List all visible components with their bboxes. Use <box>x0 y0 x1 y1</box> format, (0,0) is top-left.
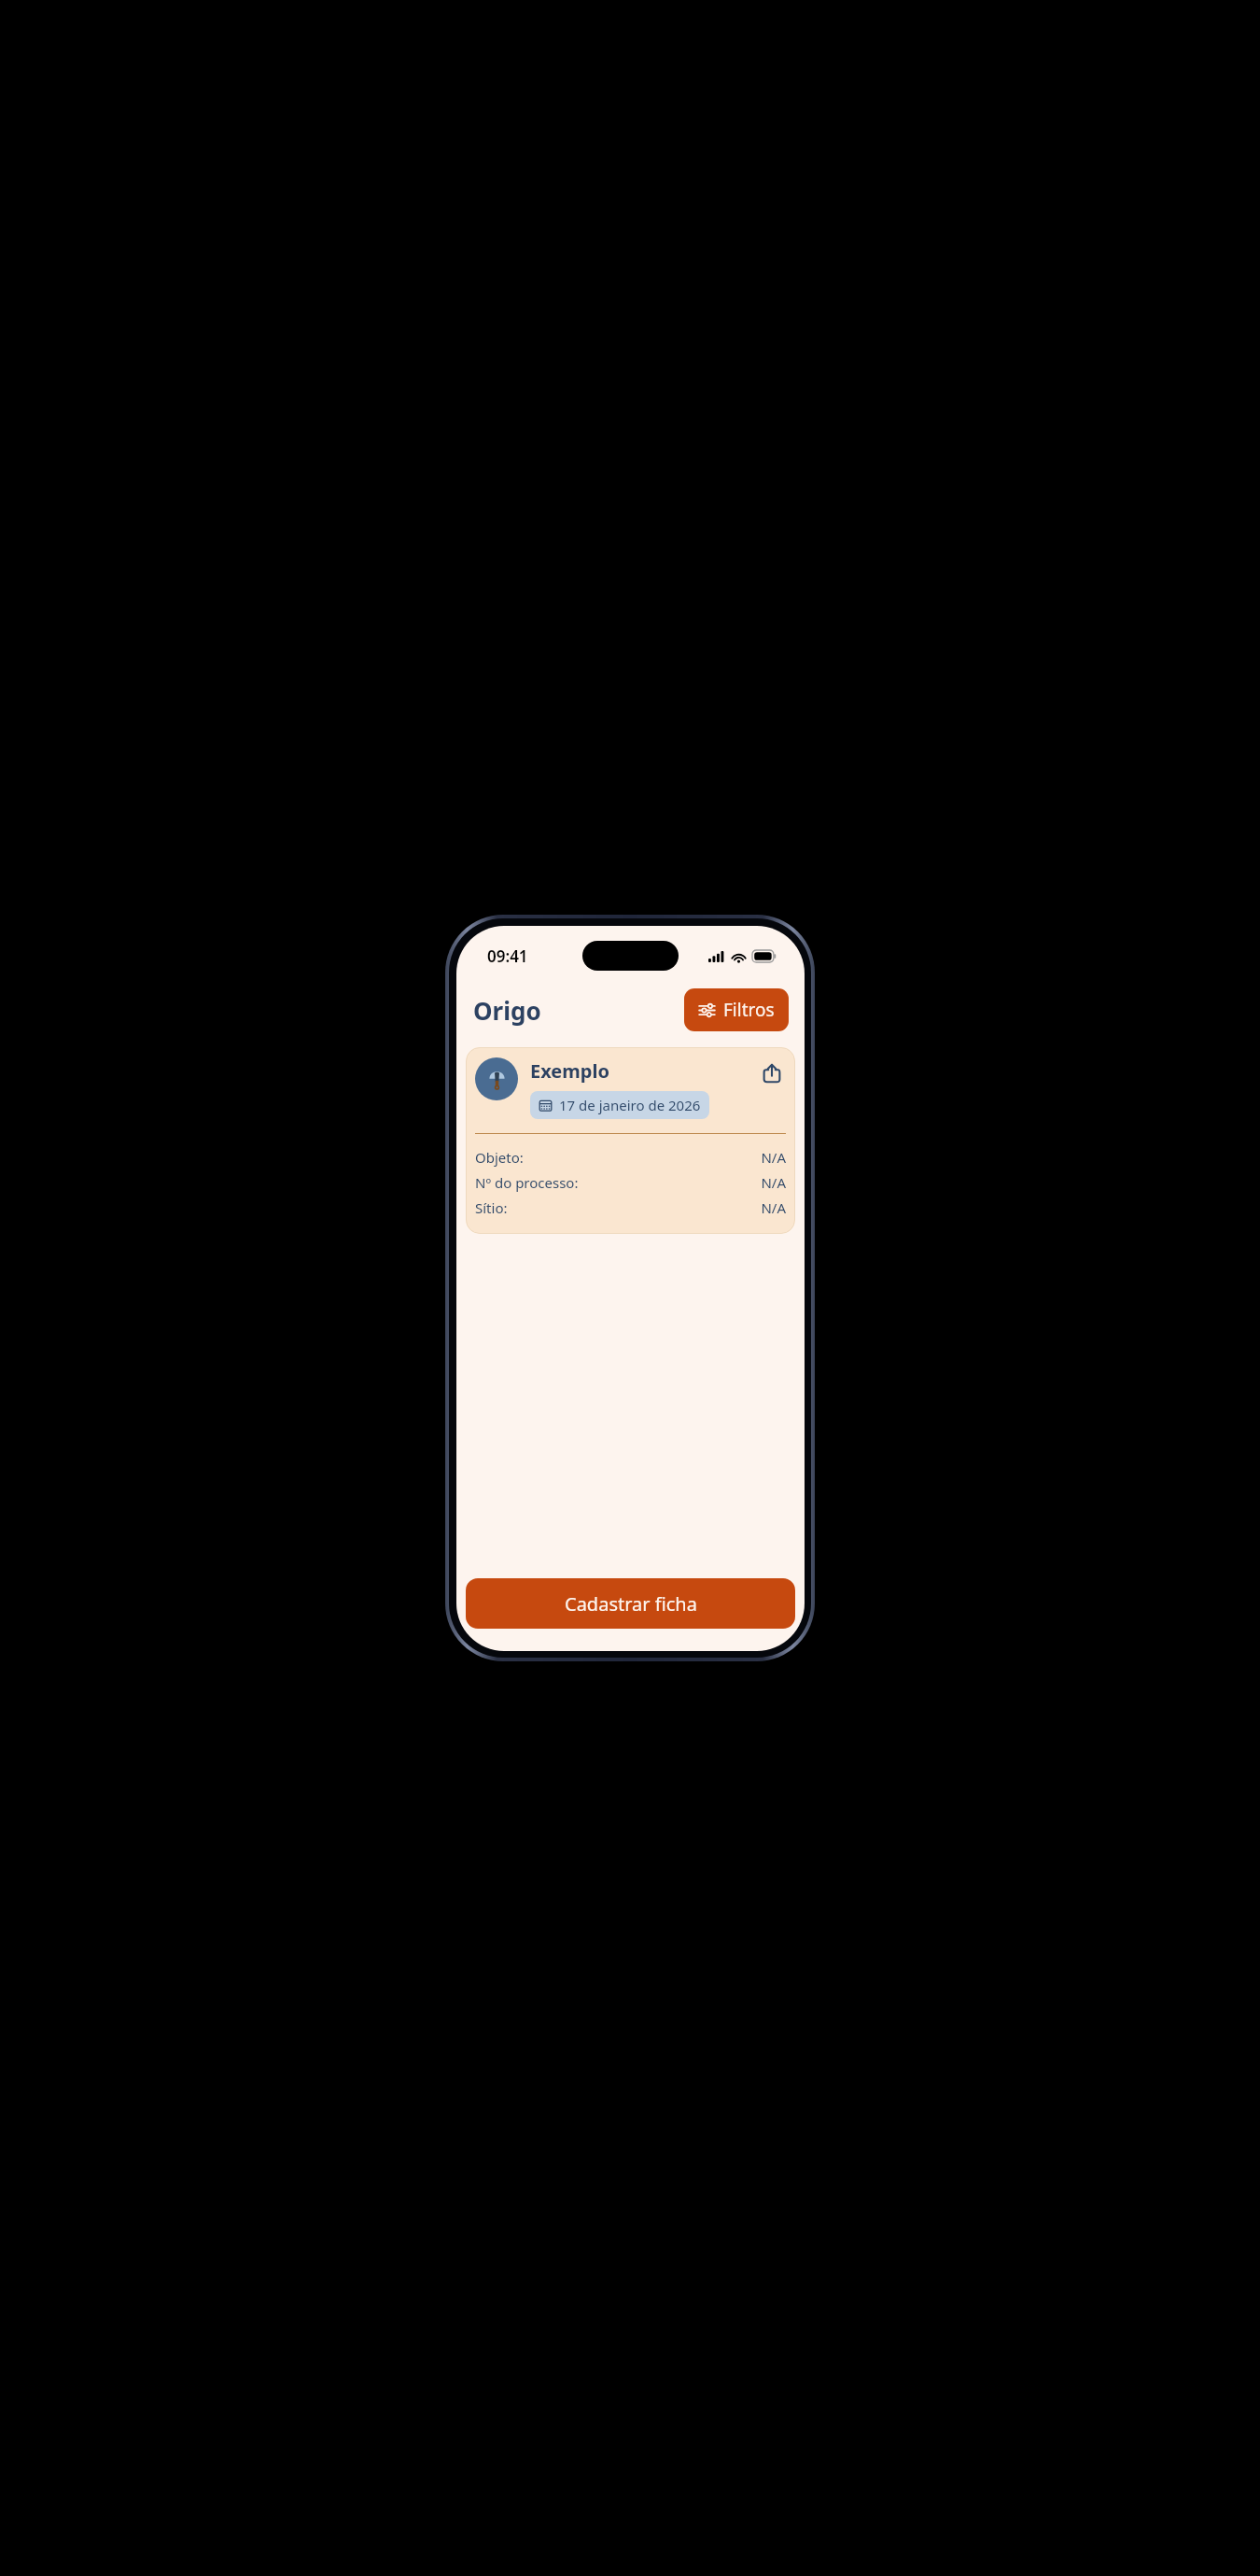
staticText: N/A <box>761 1173 786 1192</box>
staticText: Nº do processo: <box>475 1173 579 1192</box>
staticText: Origo <box>473 994 541 1027</box>
staticText: 09:41 <box>487 945 528 967</box>
staticText: Filtros <box>723 998 775 1022</box>
button[interactable]: Cadastrar ficha <box>466 1578 795 1629</box>
button[interactable]: Compartilhar <box>756 1057 788 1089</box>
staticText: N/A <box>761 1198 786 1217</box>
staticText: N/A <box>761 1148 786 1167</box>
staticText: Sítio: <box>475 1198 508 1217</box>
staticText: Objeto: <box>475 1148 524 1167</box>
button[interactable]: Filtros <box>684 988 789 1031</box>
staticText: Exemplo <box>530 1058 609 1084</box>
staticText: 17 de janeiro de 2026 <box>559 1096 701 1114</box>
button[interactable]: 17 de janeiro de 2026 <box>530 1091 709 1119</box>
button[interactable]: Exemplo <box>466 1047 795 1234</box>
staticText: Cadastrar ficha <box>565 1591 697 1617</box>
